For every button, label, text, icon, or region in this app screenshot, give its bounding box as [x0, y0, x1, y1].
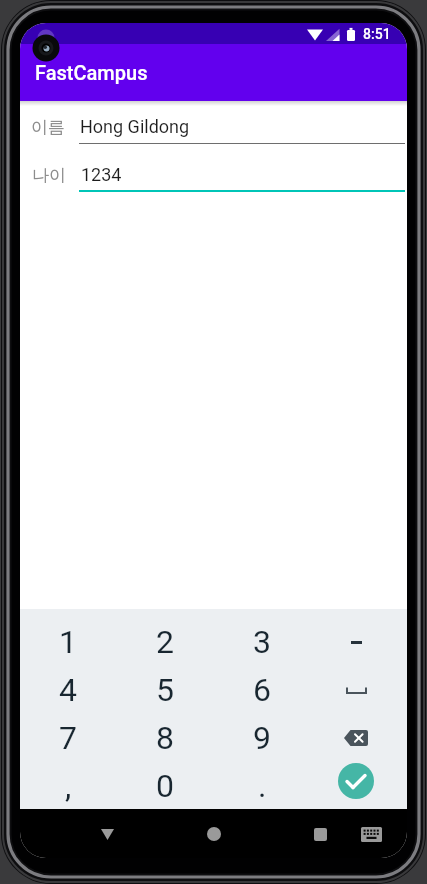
- button[interactable]: [306, 822, 334, 846]
- button[interactable]: [308, 666, 404, 714]
- button[interactable]: [357, 822, 385, 846]
- staticText: 7: [59, 719, 77, 757]
- staticText: 6: [253, 671, 271, 709]
- button[interactable]: 9: [214, 714, 310, 762]
- button[interactable]: 5: [117, 666, 213, 714]
- button[interactable]: [308, 618, 404, 666]
- button[interactable]: 4: [20, 666, 116, 714]
- staticText: 나이: [32, 165, 66, 186]
- button[interactable]: 8: [117, 714, 213, 762]
- button[interactable]: ,: [20, 762, 116, 810]
- button[interactable]: [200, 822, 228, 846]
- button[interactable]: [93, 822, 121, 846]
- staticText: 8:51: [363, 26, 391, 42]
- staticText: 이름: [31, 117, 65, 138]
- staticText: .: [258, 767, 267, 805]
- button[interactable]: 0: [117, 762, 213, 810]
- staticText: 1: [59, 623, 77, 661]
- button[interactable]: 7: [20, 714, 116, 762]
- staticText: 3: [253, 623, 271, 661]
- staticText: Hong Gildong: [80, 116, 190, 137]
- button[interactable]: 6: [214, 666, 310, 714]
- button[interactable]: 1: [20, 618, 116, 666]
- staticText: ,: [65, 767, 72, 805]
- staticText: FastCampus: [35, 61, 148, 84]
- staticText: 9: [253, 719, 271, 757]
- staticText: 2: [156, 623, 174, 661]
- button[interactable]: 2: [117, 618, 213, 666]
- staticText: 1234: [81, 164, 122, 185]
- button[interactable]: [308, 714, 404, 762]
- staticText: 5: [156, 671, 174, 709]
- button[interactable]: .: [214, 762, 310, 810]
- button[interactable]: [308, 757, 404, 805]
- staticText: 8: [156, 719, 174, 757]
- button[interactable]: 3: [214, 618, 310, 666]
- staticText: 0: [156, 767, 174, 805]
- staticText: 4: [59, 671, 77, 709]
